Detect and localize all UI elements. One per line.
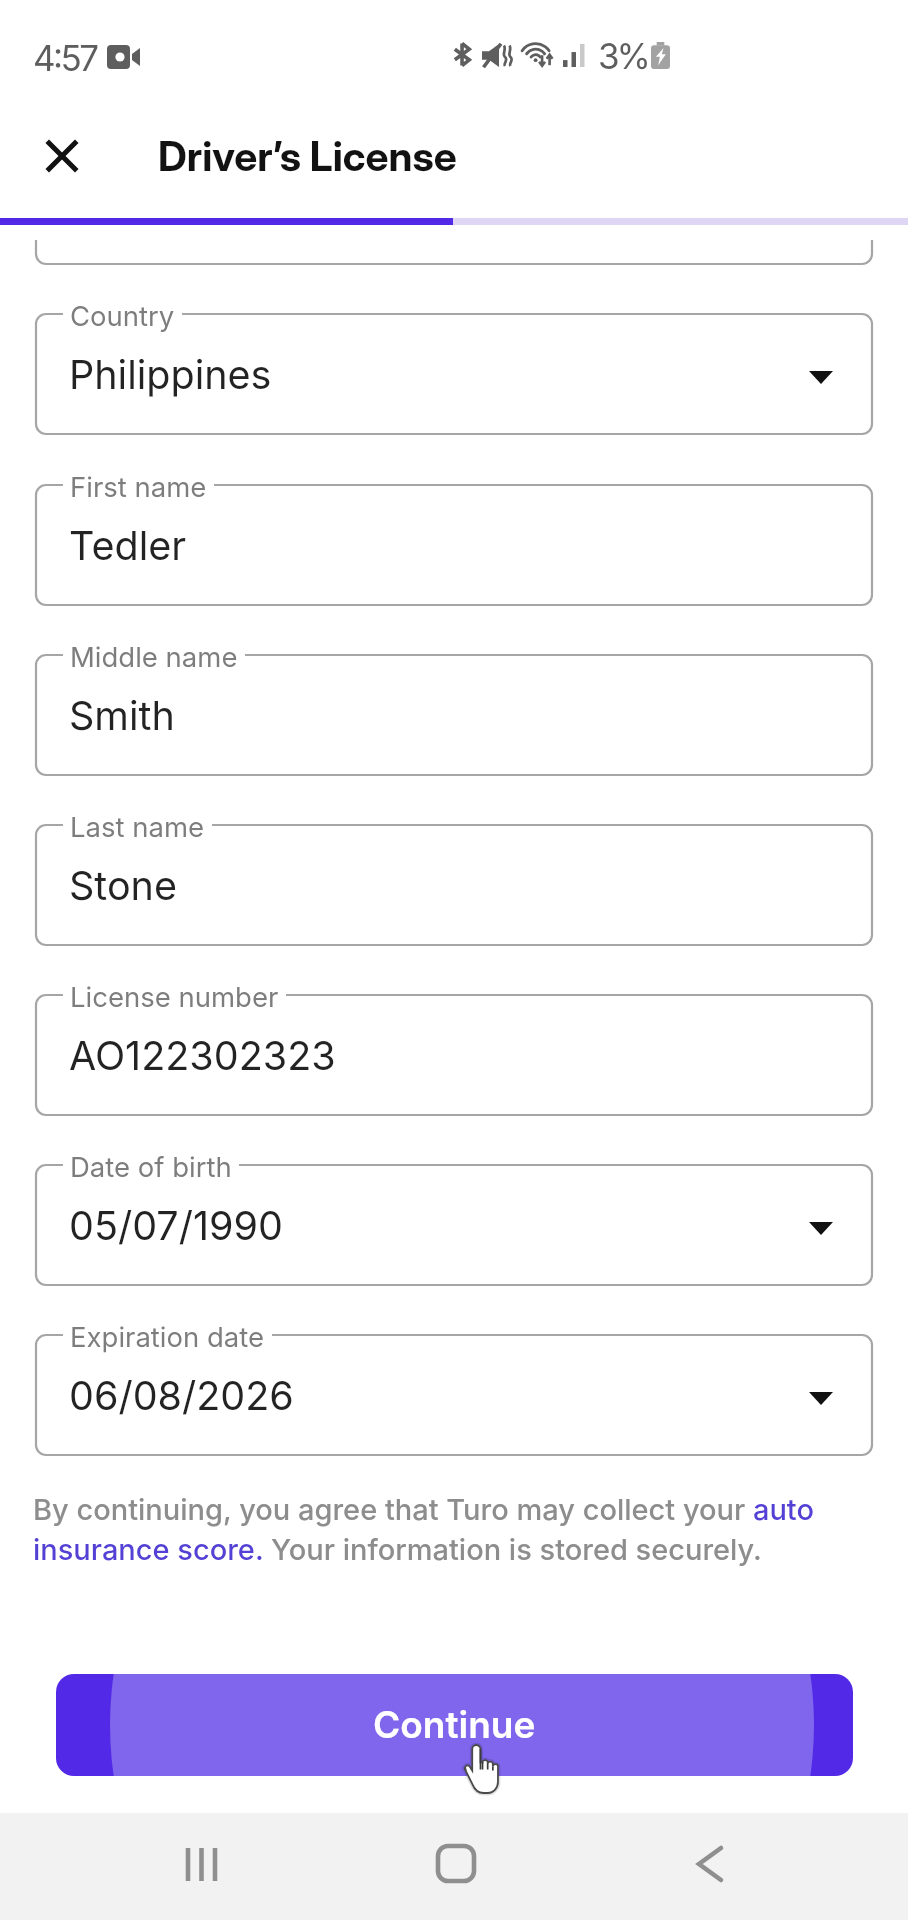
- staticText: 3%: [598, 35, 648, 77]
- staticText: Date of birth: [70, 1150, 232, 1183]
- staticText: Continue: [373, 1702, 536, 1747]
- button[interactable]: Middle name: [36, 655, 872, 775]
- button[interactable]: Country: [36, 314, 872, 434]
- button[interactable]: Date of birth: [36, 1165, 872, 1285]
- staticText: License number: [70, 980, 279, 1013]
- staticText: Philippines: [69, 351, 272, 399]
- staticText: Middle name: [70, 640, 238, 673]
- staticText: Driver’s License: [158, 131, 457, 181]
- staticText: Country: [70, 299, 175, 332]
- button[interactable]: Last name: [36, 825, 872, 945]
- staticText: 06/08/2026: [69, 1372, 294, 1420]
- staticText: Tedler: [69, 522, 187, 570]
- staticText: AO122302323: [69, 1032, 336, 1080]
- staticText: By continuing, you agree that Turo may c…: [33, 1492, 833, 1567]
- button[interactable]: Recent apps: [151, 1814, 251, 1914]
- button[interactable]: Close: [26, 120, 96, 190]
- staticText: First name: [70, 470, 207, 503]
- staticText: Expiration date: [70, 1320, 265, 1353]
- staticText: Stone: [69, 862, 177, 910]
- button[interactable]: Expiration date: [36, 1335, 872, 1455]
- staticText: Last name: [70, 810, 205, 843]
- button[interactable]: Home: [406, 1813, 506, 1913]
- staticText: Smith: [69, 692, 175, 740]
- button[interactable]: Back: [660, 1814, 760, 1914]
- button[interactable]: License number: [36, 995, 872, 1115]
- button[interactable]: First name: [36, 485, 872, 605]
- staticText: 05/07/1990: [69, 1202, 283, 1250]
- button[interactable]: Continue: [56, 1674, 853, 1776]
- staticText: 4:57: [33, 37, 97, 79]
